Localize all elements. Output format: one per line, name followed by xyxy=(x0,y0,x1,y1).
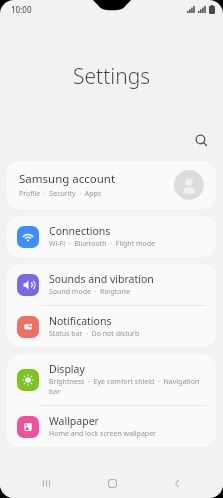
button[interactable]: Wallpaper xyxy=(7,406,216,447)
staticText: Display xyxy=(49,362,85,376)
staticText: Profile · Security · Apps xyxy=(19,189,102,199)
staticText: Settings xyxy=(0,62,223,91)
staticText: 10:00 xyxy=(11,4,32,15)
staticText: Home and lock screen wallpaper xyxy=(49,429,156,439)
button[interactable]: Search xyxy=(190,129,212,151)
staticText: Sound mode · Ringtone xyxy=(49,287,130,297)
button[interactable]: Back xyxy=(158,468,196,498)
staticText: Samsung account xyxy=(19,171,116,187)
button[interactable]: Sounds and vibration xyxy=(7,264,216,305)
button[interactable]: Samsung account xyxy=(7,161,216,209)
button[interactable]: Display xyxy=(7,354,216,405)
button[interactable]: Notifications xyxy=(7,306,216,347)
staticText: Connections xyxy=(49,224,111,238)
staticText: Sounds and vibration xyxy=(49,272,154,286)
staticText: Wi-Fi · Bluetooth · Flight mode xyxy=(49,239,156,249)
button[interactable]: Connections xyxy=(7,216,216,257)
staticText: Brightness · Eye comfort shield · Naviga… xyxy=(49,377,206,397)
button[interactable]: Recents xyxy=(27,468,65,498)
staticText: Wallpaper xyxy=(49,414,99,428)
staticText: Status bar · Do not disturb xyxy=(49,329,140,339)
button[interactable]: Home xyxy=(93,468,131,498)
staticText: Notifications xyxy=(49,314,112,328)
